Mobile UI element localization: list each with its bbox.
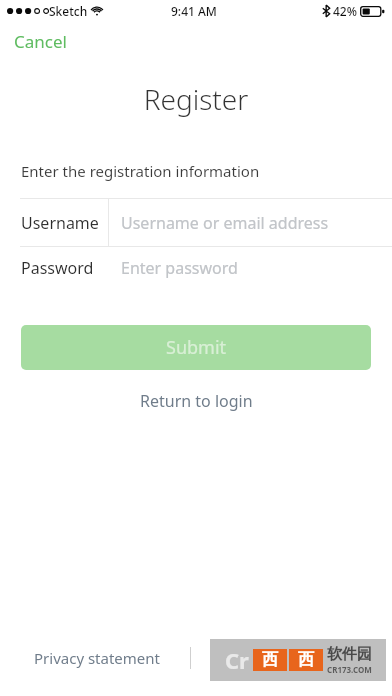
staticText: Privacy statement <box>34 648 160 668</box>
button[interactable]: Privacy statement <box>24 642 170 674</box>
staticText: Password <box>21 257 94 279</box>
staticText: 软件园 <box>327 645 372 664</box>
staticText: Username or email address <box>121 212 329 234</box>
staticText: 西 <box>298 650 314 670</box>
staticText: Cancel <box>14 30 67 53</box>
staticText: Submit <box>166 335 227 360</box>
staticText: Cr <box>225 645 249 675</box>
staticText: 42% <box>333 3 357 19</box>
button[interactable]: Submit <box>21 325 371 370</box>
staticText: Username <box>21 212 99 234</box>
staticText: Enter the registration information <box>21 161 260 181</box>
staticText: Return to login <box>140 390 253 412</box>
staticText: Enter password <box>121 257 238 279</box>
button[interactable]: Return to login <box>130 385 263 417</box>
button[interactable]: Username <box>0 199 392 246</box>
button[interactable]: Password <box>0 247 392 289</box>
staticText: Sketch <box>49 3 88 19</box>
staticText: Register <box>0 80 392 118</box>
staticText: 西 <box>262 650 278 670</box>
staticText: CR173.COM <box>327 664 372 675</box>
button[interactable]: Cancel <box>6 26 75 57</box>
staticText: 9:41 AM <box>171 3 217 19</box>
